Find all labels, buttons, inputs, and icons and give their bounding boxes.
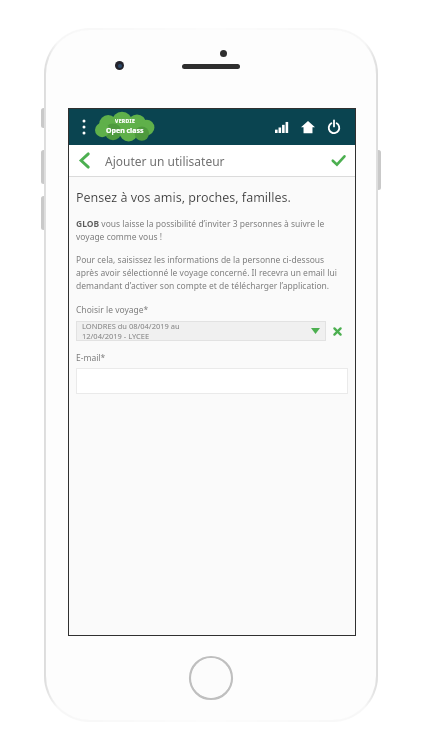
staticText: Open class [106, 126, 144, 136]
button[interactable]: Power [321, 112, 347, 142]
button[interactable]: Menu [73, 109, 95, 145]
staticText: Choisir le voyage* [76, 304, 149, 316]
button[interactable]: Valider [321, 145, 355, 176]
staticText: LONDRES du 08/04/2019 au 12/04/2019 - LY… [82, 321, 196, 341]
button[interactable] [76, 368, 348, 394]
button[interactable]: Verdie Open Class [95, 112, 155, 142]
button[interactable]: Signal [269, 112, 295, 142]
staticText: Pensez à vos amis, proches, familles. [76, 189, 291, 206]
button[interactable]: Effacer [326, 321, 348, 341]
staticText: VERDIE [115, 118, 136, 125]
staticText: Pour cela, saisissez les informations de… [76, 254, 348, 292]
button[interactable]: Home [295, 112, 321, 142]
button[interactable]: Ajouter un utilisateur [69, 145, 225, 176]
staticText: E-mail* [76, 352, 106, 364]
button[interactable]: LONDRES du 08/04/2019 au 12/04/2019 - LY… [76, 321, 326, 341]
staticText: Ajouter un utilisateur [105, 153, 225, 169]
staticText: GLOB vous laisse la possibilité d’invite… [76, 218, 348, 243]
